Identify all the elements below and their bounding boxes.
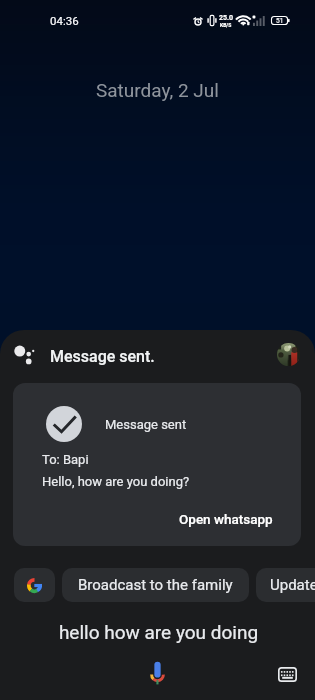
staticText: Saturday, 2 Jul xyxy=(96,79,219,101)
staticText: Message sent xyxy=(105,417,187,432)
button[interactable]: Message sent. xyxy=(0,330,315,382)
button[interactable]: Google Search xyxy=(14,568,55,602)
button[interactable]: Google account xyxy=(277,343,300,366)
staticText: hello how are you doing xyxy=(1,621,315,643)
button[interactable]: Broadcast to the family xyxy=(62,568,249,602)
button[interactable]: Update my family xyxy=(256,568,315,602)
staticText: To: Bapi xyxy=(42,452,89,467)
staticText: Message sent. xyxy=(50,347,155,366)
staticText: Hello, how are you doing? xyxy=(42,474,190,489)
staticText: 04:36 xyxy=(50,14,79,27)
staticText: 25.0 xyxy=(219,14,234,22)
button[interactable]: Message sent xyxy=(13,383,301,546)
staticText: Update my family xyxy=(270,576,315,594)
staticText: 51 xyxy=(276,17,284,25)
staticText: KB/S xyxy=(220,22,232,28)
staticText: Open whatsapp xyxy=(179,511,273,527)
staticText: Broadcast to the family xyxy=(78,576,233,594)
button[interactable]: Keyboard xyxy=(273,660,301,688)
button[interactable]: Open whatsapp xyxy=(179,511,273,527)
button[interactable]: Microphone xyxy=(140,655,175,690)
